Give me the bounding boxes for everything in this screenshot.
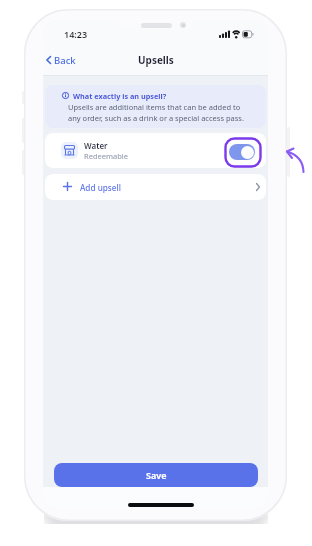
staticText: Upsells bbox=[138, 53, 174, 67]
staticText: What exactly is an upsell? bbox=[73, 91, 167, 101]
staticText: Back bbox=[54, 54, 76, 67]
staticText: 14:23 bbox=[64, 28, 88, 40]
button[interactable]: Save bbox=[54, 463, 258, 487]
staticText: Water bbox=[84, 140, 108, 151]
button[interactable]: Back bbox=[45, 51, 95, 69]
staticText: Upsells are additional items that can be… bbox=[68, 102, 241, 112]
staticText: Redeemable bbox=[84, 151, 128, 161]
staticText: Save bbox=[146, 469, 167, 481]
staticText: Add upsell bbox=[80, 182, 121, 193]
staticText: any order, such as a drink or a special … bbox=[68, 113, 244, 123]
button[interactable] bbox=[229, 144, 255, 160]
button[interactable]: Add upsell bbox=[45, 174, 266, 200]
button[interactable]: Water bbox=[45, 133, 266, 168]
